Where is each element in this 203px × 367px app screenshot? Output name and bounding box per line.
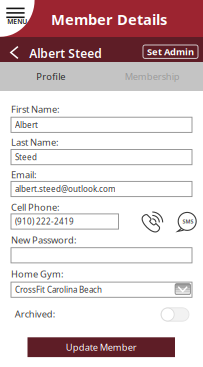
- button[interactable]: Membership: [101, 62, 203, 91]
- staticText: Member Details: [51, 9, 167, 29]
- staticText: First Name:: [11, 103, 60, 115]
- button[interactable]: Choose home gym: [11, 282, 26, 293]
- staticText: Update Member: [66, 341, 137, 353]
- button[interactable]: Profile: [0, 62, 101, 91]
- button[interactable]: Menu: [0, 0, 44, 44]
- button[interactable]: Archived: [0, 0, 28, 13]
- staticText: Steed: [15, 152, 37, 162]
- staticText: MENU: [7, 17, 27, 26]
- button[interactable]: Call: [0, 0, 23, 23]
- staticText: (910) 222-2419: [15, 216, 74, 227]
- staticText: Albert: [15, 119, 38, 130]
- staticText: Membership: [125, 70, 180, 83]
- staticText: Email:: [11, 168, 37, 181]
- staticText: Set Admin: [147, 45, 194, 58]
- staticText: Profile: [36, 70, 65, 83]
- staticText: Albert Steed: [29, 45, 102, 61]
- staticText: Cell Phone:: [11, 201, 60, 213]
- staticText: Archived:: [15, 308, 56, 320]
- staticText: New Password:: [11, 234, 77, 246]
- staticText: albert.steed@outlook.com: [15, 184, 115, 194]
- button[interactable]: Albert Steed: [0, 0, 110, 25]
- staticText: Home Gym:: [11, 268, 64, 280]
- staticText: SMS: [183, 218, 194, 225]
- button[interactable]: Set Admin: [0, 0, 55, 13]
- staticText: Last Name:: [11, 136, 59, 148]
- staticText: CrossFit Carolina Beach: [15, 284, 102, 295]
- button[interactable]: Update Member: [0, 0, 147, 20]
- button[interactable]: Send text message: [0, 0, 20, 20]
